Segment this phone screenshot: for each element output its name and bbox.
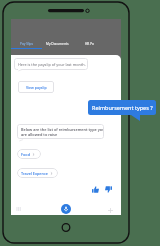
staticText: Here is the payslip of your last month. bbox=[18, 62, 86, 67]
staticText: Reimbursement types ? bbox=[92, 104, 153, 111]
button[interactable]: View payslip bbox=[18, 81, 54, 93]
button[interactable]: Food bbox=[17, 149, 41, 159]
button[interactable]: Reimbursement types ? bbox=[88, 100, 156, 115]
staticText: My Documents bbox=[46, 42, 69, 46]
staticText: Food bbox=[21, 152, 30, 157]
staticText: Pay Slips bbox=[20, 42, 34, 46]
button[interactable]: Dislike bbox=[105, 186, 112, 193]
staticText: Travel Expence bbox=[21, 171, 48, 176]
staticText: Below are the list of reimbursement type… bbox=[21, 127, 104, 137]
button[interactable]: Travel Expence bbox=[17, 168, 58, 178]
button[interactable]: Voice input bbox=[61, 204, 71, 214]
button[interactable]: HR Po bbox=[77, 37, 102, 51]
staticText: View payslip bbox=[26, 85, 47, 90]
button[interactable]: Like bbox=[92, 186, 99, 193]
button[interactable]: Pay Slips bbox=[11, 37, 42, 51]
staticText: HR Po bbox=[85, 42, 95, 46]
button[interactable]: My Documents bbox=[42, 37, 73, 51]
